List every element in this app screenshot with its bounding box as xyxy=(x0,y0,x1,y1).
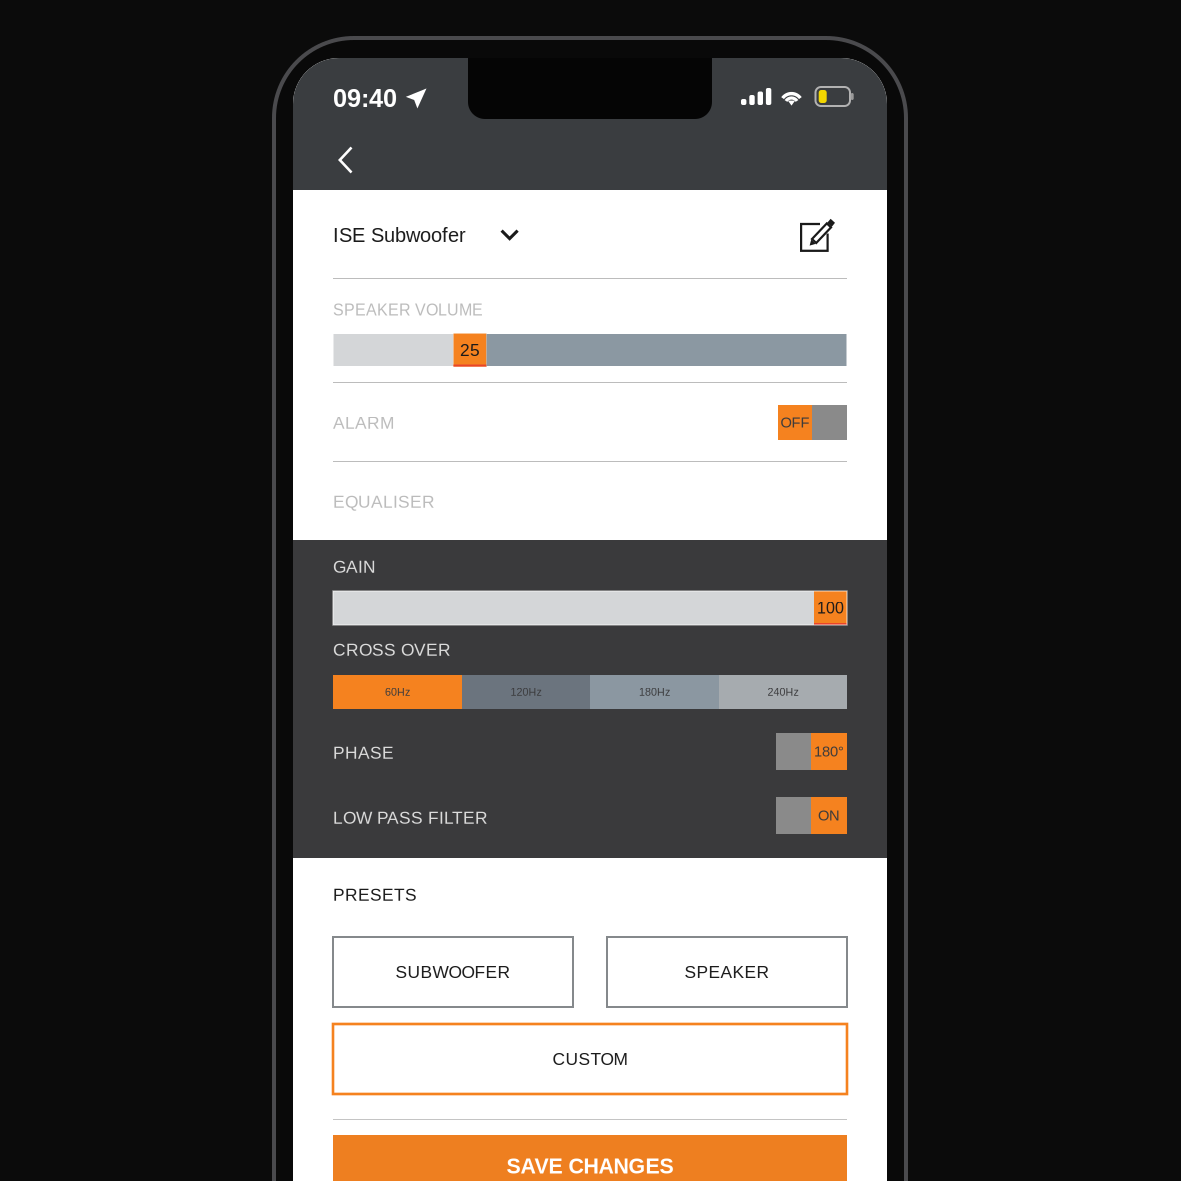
staticText: ON xyxy=(818,807,840,824)
button[interactable]: OFF xyxy=(778,405,847,440)
button[interactable]: ON xyxy=(776,797,847,834)
button[interactable]: 60Hz xyxy=(333,675,462,709)
button[interactable]: 120Hz xyxy=(462,675,590,709)
staticText: OFF xyxy=(780,414,809,431)
staticText: LOW PASS FILTER xyxy=(333,808,488,827)
staticText: SUBWOOFER xyxy=(395,962,510,982)
staticText: SAVE CHANGES xyxy=(506,1154,673,1178)
staticText: SPEAKER VOLUME xyxy=(333,301,483,319)
button[interactable]: 180Hz xyxy=(590,675,719,709)
button[interactable]: SAVE CHANGES xyxy=(333,1135,847,1181)
staticText: CROSS OVER xyxy=(333,640,451,659)
staticText: GAIN xyxy=(333,557,376,576)
staticText: SPEAKER xyxy=(684,962,769,982)
button[interactable]: 180° xyxy=(776,733,847,770)
staticText: 120Hz xyxy=(510,686,541,698)
staticText: 09:40 xyxy=(333,84,397,112)
staticText: 60Hz xyxy=(385,686,410,698)
staticText: 240Hz xyxy=(767,686,798,698)
staticText: CUSTOM xyxy=(552,1049,627,1069)
button[interactable]: SPEAKER xyxy=(607,937,847,1007)
staticText: PRESETS xyxy=(333,885,417,904)
staticText: 25 xyxy=(460,340,480,360)
button[interactable]: Back xyxy=(315,130,377,190)
staticText: 100 xyxy=(817,599,844,617)
staticText: ISE Subwoofer xyxy=(333,224,466,246)
staticText: EQUALISER xyxy=(333,492,435,511)
button[interactable]: CUSTOM xyxy=(333,1024,847,1094)
staticText: 180° xyxy=(814,743,844,760)
button[interactable]: Edit xyxy=(800,210,836,252)
staticText: 180Hz xyxy=(639,686,670,698)
button[interactable]: ISE Subwoofer xyxy=(333,210,519,260)
staticText: PHASE xyxy=(333,743,394,762)
staticText: ALARM xyxy=(333,413,394,432)
button[interactable]: SUBWOOFER xyxy=(333,937,573,1007)
button[interactable]: 240Hz xyxy=(719,675,847,709)
